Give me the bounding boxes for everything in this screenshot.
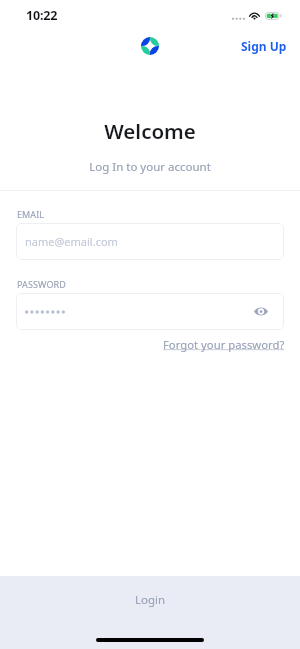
button[interactable]: Logo bbox=[141, 37, 159, 55]
button[interactable]: Login bbox=[0, 576, 300, 626]
staticText: Login bbox=[135, 592, 166, 608]
staticText: name@email.com bbox=[25, 234, 118, 249]
staticText: PASSWORD bbox=[17, 278, 66, 290]
button[interactable]: Forgot your password? bbox=[163, 337, 300, 352]
staticText: Forgot your password? bbox=[163, 337, 285, 352]
staticText: 10:22 bbox=[26, 7, 58, 24]
staticText: Sign Up bbox=[241, 38, 287, 54]
button[interactable]: name@email.com bbox=[16, 223, 284, 260]
button[interactable]: Show password bbox=[16, 293, 284, 330]
staticText: Log In to your account bbox=[0, 159, 300, 175]
button[interactable]: Show password bbox=[254, 306, 268, 317]
staticText: EMAIL bbox=[17, 208, 45, 220]
staticText: Welcome bbox=[0, 117, 300, 145]
button[interactable]: Sign Up bbox=[226, 32, 300, 60]
